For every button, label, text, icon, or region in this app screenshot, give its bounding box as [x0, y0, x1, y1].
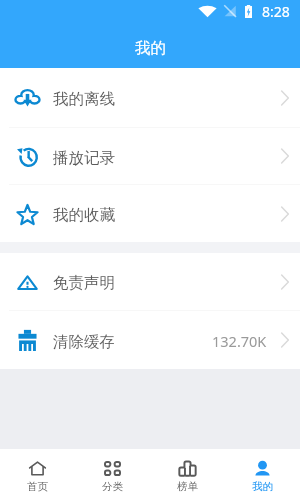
staticText: 分类	[102, 480, 123, 493]
staticText: 首页	[27, 480, 48, 493]
staticText: 我的离线	[53, 89, 115, 109]
staticText: 清除缓存	[53, 332, 115, 352]
button[interactable]: 我的收藏	[0, 185, 300, 242]
staticText: 榜单	[177, 480, 198, 493]
staticText: 132.70K	[212, 331, 267, 351]
button[interactable]: 我的	[225, 449, 300, 500]
button[interactable]: 分类	[75, 449, 150, 500]
button[interactable]: 我的离线	[0, 68, 300, 127]
button[interactable]: 播放记录	[0, 128, 300, 184]
button[interactable]: 榜单	[150, 449, 225, 500]
button[interactable]: 首页	[0, 449, 75, 500]
staticText: 播放记录	[53, 148, 115, 168]
button[interactable]: 免责声明	[0, 253, 300, 310]
staticText: 我的	[135, 38, 166, 58]
staticText: 8:28	[262, 2, 290, 21]
staticText: 我的收藏	[53, 205, 115, 225]
button[interactable]: 清除缓存	[0, 311, 300, 369]
staticText: 我的	[252, 480, 273, 493]
staticText: 免责声明	[53, 273, 115, 293]
